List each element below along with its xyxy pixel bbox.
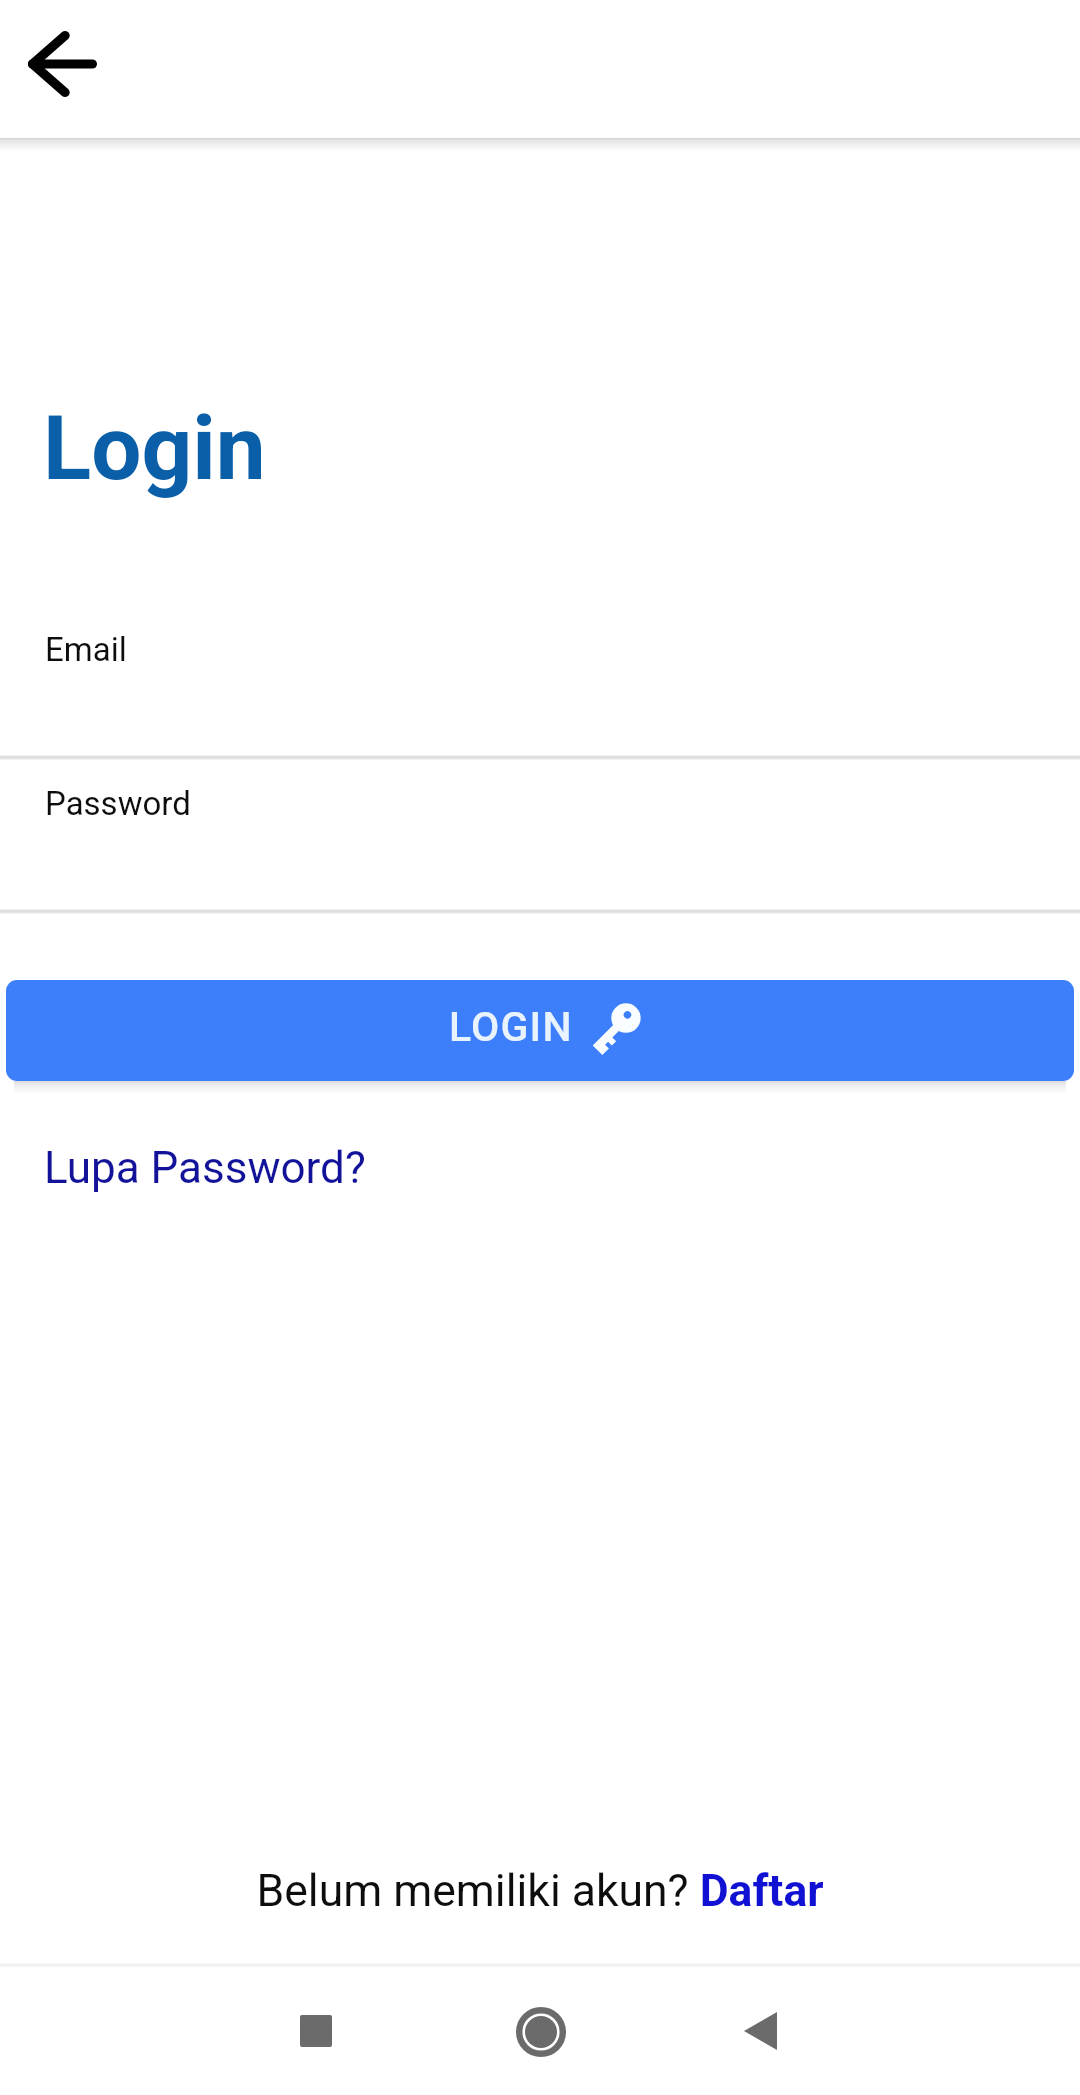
- button[interactable]: Back: [10, 12, 114, 116]
- button[interactable]: Belum memiliki akun? Daftar: [0, 1859, 1080, 1923]
- staticText: LOGIN: [449, 1003, 573, 1051]
- staticText: Password: [45, 784, 191, 823]
- button[interactable]: Password: [0, 758, 1080, 910]
- button[interactable]: Email: [0, 604, 1080, 756]
- button[interactable]: Home: [476, 1968, 605, 2095]
- button[interactable]: Recent apps: [251, 1967, 380, 2095]
- staticText: Lupa Password?: [44, 1142, 366, 1194]
- button[interactable]: Back: [696, 1967, 825, 2095]
- button[interactable]: Lupa Password?: [28, 1132, 382, 1204]
- staticText: Login: [43, 396, 266, 500]
- staticText: Email: [45, 630, 127, 669]
- button[interactable]: LOGIN: [6, 980, 1074, 1081]
- staticText: Belum memiliki akun? Daftar: [256, 1865, 824, 1917]
